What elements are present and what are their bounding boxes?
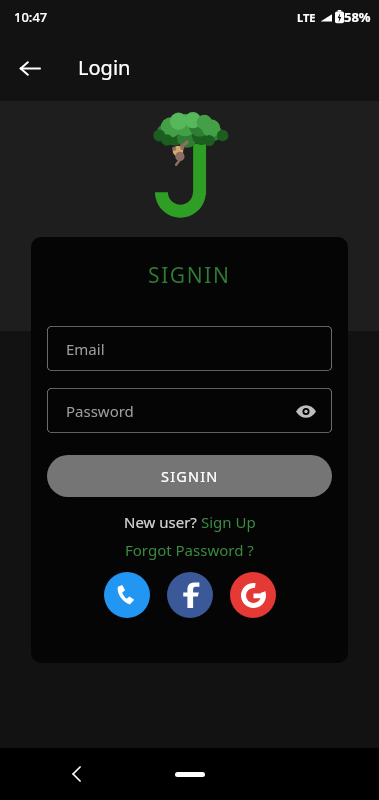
staticText: 58% xyxy=(344,8,371,26)
staticText: Sign Up xyxy=(201,512,256,532)
button[interactable]: Sign in with Google xyxy=(230,572,276,618)
staticText: Forgot Password ? xyxy=(125,540,254,560)
button[interactable]: Forgot Password ? xyxy=(125,540,254,560)
staticText: 10:47 xyxy=(14,8,48,26)
staticText: Email xyxy=(66,339,105,359)
button[interactable]: Back xyxy=(60,757,94,791)
staticText: SIGNIN xyxy=(148,261,231,290)
button[interactable]: Sign in with phone xyxy=(104,572,150,618)
staticText: SIGNIN xyxy=(161,466,219,486)
button[interactable]: SIGNIN xyxy=(47,455,332,497)
button[interactable]: Password xyxy=(47,388,332,433)
button[interactable]: Email xyxy=(47,326,332,371)
button[interactable]: Back xyxy=(8,47,50,89)
button[interactable]: Sign in with Facebook xyxy=(167,572,213,618)
staticText: LTE xyxy=(297,10,316,25)
staticText: Password xyxy=(66,401,134,421)
button[interactable]: Show password xyxy=(292,397,320,425)
button[interactable]: Sign Up xyxy=(201,512,256,532)
staticText: Login xyxy=(78,54,131,81)
staticText: New user? xyxy=(124,512,201,532)
